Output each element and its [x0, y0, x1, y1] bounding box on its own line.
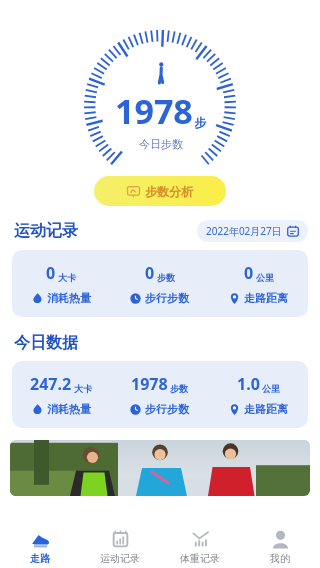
staticText: 运动记录 [100, 552, 140, 565]
button[interactable]: 步数分析 [94, 176, 226, 206]
staticText: 步行步数 [145, 402, 189, 416]
staticText: 步数分析 [145, 184, 193, 199]
button[interactable]: 我的 [240, 524, 320, 568]
staticText: 消耗热量 [47, 291, 91, 305]
staticText: 步 [194, 115, 206, 130]
staticText: 运动记录 [14, 221, 78, 241]
staticText: 0 [46, 262, 56, 284]
staticText: 今日步数 [139, 137, 183, 151]
staticText: 0 [145, 262, 155, 284]
staticText: 公里 [262, 383, 280, 394]
button[interactable]: 体重记录 [160, 524, 240, 568]
staticText: 步数 [170, 383, 188, 394]
staticText: 1978 [115, 88, 193, 134]
staticText: 0 [244, 262, 254, 284]
staticText: 1.0 [237, 373, 260, 395]
staticText: 步数 [157, 272, 175, 283]
staticText: 1978 [131, 373, 168, 395]
button[interactable]: 走路 [0, 524, 80, 568]
staticText: 走路距离 [244, 402, 288, 416]
staticText: 消耗热量 [47, 402, 91, 416]
staticText: 步行步数 [145, 291, 189, 305]
button[interactable]: 2022年02月27日 [197, 220, 308, 242]
staticText: 今日数据 [14, 333, 78, 353]
staticText: 247.2 [30, 373, 72, 395]
staticText: 我的 [270, 552, 290, 565]
button[interactable]: 0 [12, 250, 308, 317]
staticText: 走路 [30, 552, 50, 565]
staticText: 走路距离 [244, 291, 288, 305]
staticText: 2022年02月27日 [206, 224, 282, 238]
staticText: 大卡 [58, 272, 76, 283]
button[interactable]: 运动记录 [80, 524, 160, 568]
button[interactable]: Running promo banner [10, 440, 310, 496]
staticText: 公里 [256, 272, 274, 283]
other: Pick date [287, 225, 299, 237]
staticText: 体重记录 [180, 552, 220, 565]
button[interactable]: 247.2 [12, 361, 308, 428]
staticText: 大卡 [74, 383, 92, 394]
